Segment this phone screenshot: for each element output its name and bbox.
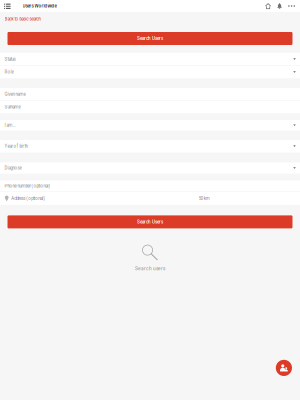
button[interactable]: Address (optional) (0, 192, 300, 205)
button[interactable]: Given name (0, 88, 300, 100)
button[interactable]: Search Users (7, 215, 292, 228)
button[interactable]: Menu (0, 0, 15, 12)
staticText: Phone number (optional) (4, 183, 50, 189)
button[interactable]: Home (262, 0, 274, 12)
staticText: Surname (4, 104, 20, 110)
staticText: Address (optional) (11, 196, 45, 201)
staticText: Search Users (137, 36, 163, 41)
button[interactable]: Search Users (7, 32, 292, 45)
staticText: Given name (4, 92, 25, 97)
button[interactable]: Role (0, 66, 300, 78)
button[interactable]: Back to basic search (0, 12, 300, 26)
button[interactable]: Status (0, 53, 300, 65)
button[interactable]: I am... (0, 120, 300, 131)
button[interactable]: Phone number (optional) (0, 180, 300, 192)
button[interactable]: Surname (0, 101, 300, 113)
staticText: Role (4, 69, 13, 75)
button[interactable]: Add user (276, 360, 292, 376)
staticText: 50 km (199, 196, 210, 201)
button[interactable]: Year of birth (0, 140, 300, 152)
button[interactable]: Notifications (274, 0, 285, 12)
staticText: Year of birth (4, 144, 27, 149)
button[interactable]: Diagnose (0, 162, 300, 174)
staticText: Search Users (137, 219, 163, 224)
staticText: I am... (4, 123, 15, 128)
staticText: Status (4, 57, 15, 62)
staticText: Back to basic search (5, 16, 41, 22)
button[interactable]: More options (285, 0, 297, 12)
staticText: Search users (135, 266, 165, 271)
staticText: Users Worldwide (23, 3, 57, 9)
staticText: Diagnose (4, 165, 21, 171)
